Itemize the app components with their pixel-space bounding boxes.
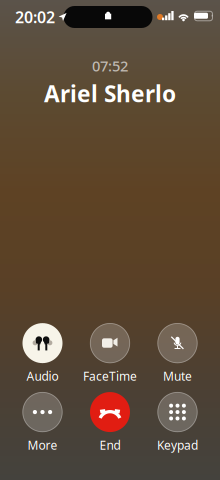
button[interactable]: More — [9, 392, 76, 453]
staticText: More — [27, 437, 57, 453]
button[interactable]: Keypad — [144, 392, 211, 453]
button[interactable]: End — [76, 392, 144, 453]
staticText: FaceTime — [83, 368, 137, 384]
staticText: End — [99, 437, 120, 453]
staticText: Keypad — [157, 437, 198, 453]
staticText: Ariel Sherlo — [44, 78, 176, 109]
staticText: Mute — [163, 368, 192, 384]
staticText: 07:52 — [92, 56, 128, 75]
staticText: Audio — [26, 368, 58, 384]
button[interactable]: Mute — [144, 323, 211, 384]
staticText: 20:02 — [15, 6, 55, 28]
button[interactable]: Audio — [9, 323, 76, 384]
button[interactable]: FaceTime — [76, 323, 144, 384]
